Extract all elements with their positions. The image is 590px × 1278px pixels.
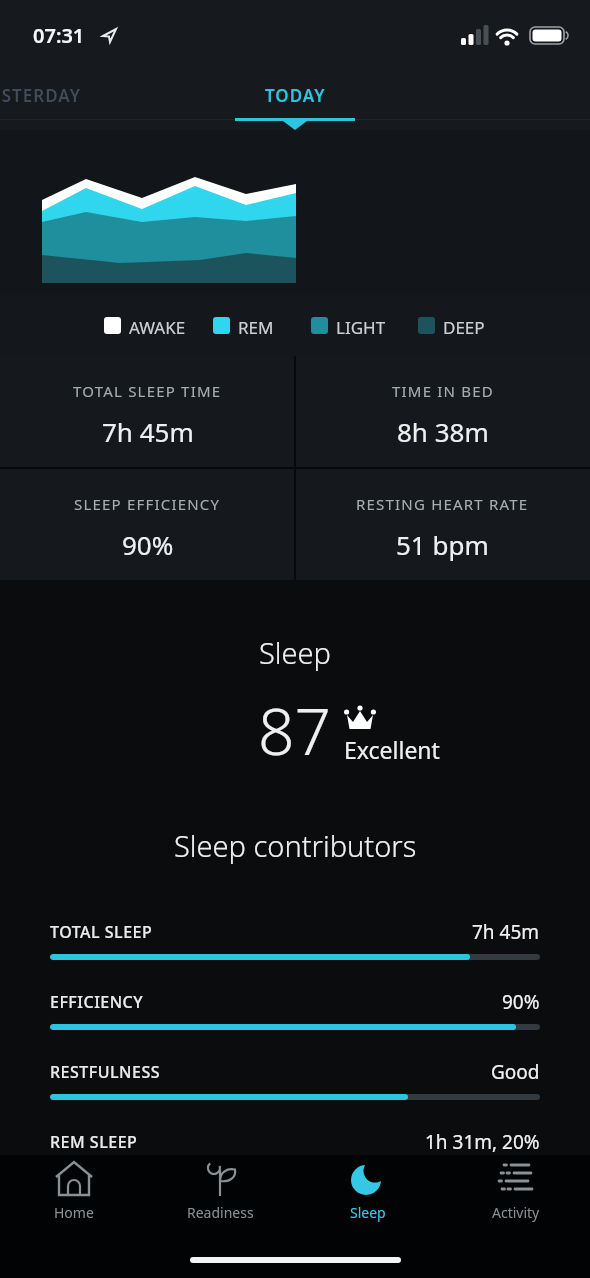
staticText: 7h 45m	[472, 919, 540, 945]
button[interactable]: Home	[0, 1155, 147, 1235]
button[interactable]: Sleep	[294, 1155, 442, 1235]
staticText: EFFICIENCY	[50, 991, 144, 1013]
staticText: 90%	[122, 527, 174, 562]
staticText: AWAKE	[129, 316, 186, 339]
staticText: Good	[491, 1059, 540, 1085]
staticText: 87	[258, 687, 332, 774]
button[interactable]: Activity	[442, 1155, 590, 1235]
button[interactable]: EFFICIENCY	[50, 989, 540, 1030]
staticText: Home	[54, 1203, 94, 1222]
staticText: Activity	[492, 1203, 540, 1222]
button[interactable]: TOTAL SLEEP	[50, 919, 540, 960]
staticText: TOTAL SLEEP TIME	[73, 381, 222, 401]
staticText: LIGHT	[336, 316, 386, 339]
staticText: Readiness	[187, 1203, 254, 1222]
staticText: Sleep	[259, 633, 331, 672]
button[interactable]: REM SLEEP	[50, 1129, 540, 1170]
staticText: 07:31	[33, 22, 85, 49]
staticText: DEEP	[443, 316, 485, 339]
staticText: 1h 31m, 20%	[425, 1129, 540, 1155]
staticText: SLEEP EFFICIENCY	[74, 494, 221, 514]
staticText: RESTING HEART RATE	[356, 494, 529, 514]
button[interactable]: RESTFULNESS	[50, 1059, 540, 1100]
button[interactable]: YESTERDAY	[0, 84, 81, 107]
staticText: TOTAL SLEEP	[50, 921, 153, 943]
staticText: REM SLEEP	[50, 1131, 138, 1153]
button[interactable]: Readiness	[147, 1155, 294, 1235]
staticText: Sleep	[350, 1203, 386, 1222]
staticText: 8h 38m	[397, 414, 489, 449]
staticText: 7h 45m	[102, 414, 194, 449]
staticText: 90%	[502, 989, 540, 1015]
staticText: Sleep contributors	[174, 826, 417, 865]
staticText: 51 bpm	[396, 527, 489, 562]
button[interactable]: TODAY	[265, 84, 326, 107]
staticText: RESTFULNESS	[50, 1061, 161, 1083]
staticText: REM	[238, 316, 274, 339]
staticText: Excellent	[344, 734, 440, 765]
staticText: TIME IN BED	[392, 381, 494, 401]
